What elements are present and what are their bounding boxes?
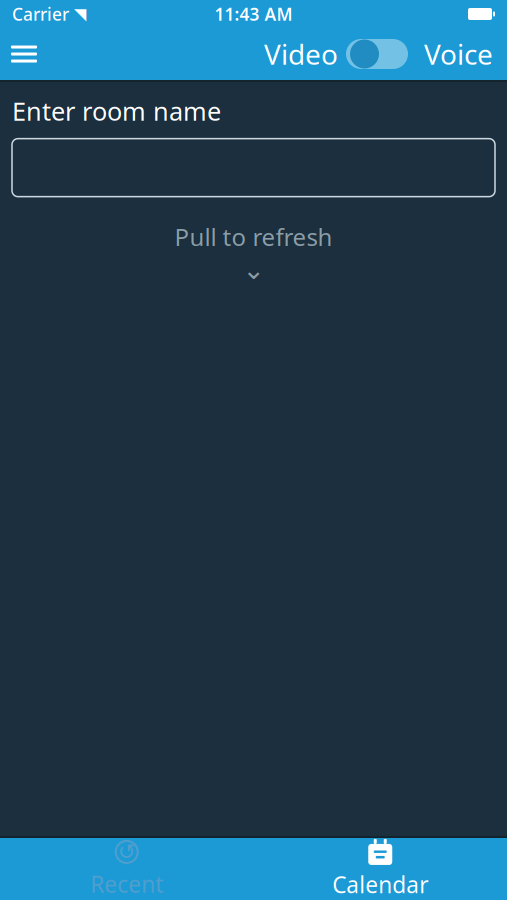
staticText: Carrier: [12, 2, 69, 25]
button[interactable]: [0, 139, 507, 197]
staticText: Calendar: [332, 869, 428, 899]
staticText: Pull to refresh: [174, 221, 332, 252]
staticText: Voice: [424, 35, 493, 73]
staticText: 11:43 AM: [214, 2, 292, 25]
button[interactable]: Menu: [0, 28, 48, 80]
staticText: Video: [264, 35, 338, 73]
staticText: ↺: [118, 840, 136, 864]
staticText: ◥: [74, 5, 86, 23]
button[interactable]: ↺: [0, 838, 253, 900]
button[interactable]: Calendar: [253, 838, 507, 900]
staticText: ⌄: [242, 254, 264, 285]
button[interactable]: Video: [264, 28, 507, 80]
staticText: Recent: [90, 869, 163, 899]
staticText: Enter room name: [12, 94, 221, 128]
